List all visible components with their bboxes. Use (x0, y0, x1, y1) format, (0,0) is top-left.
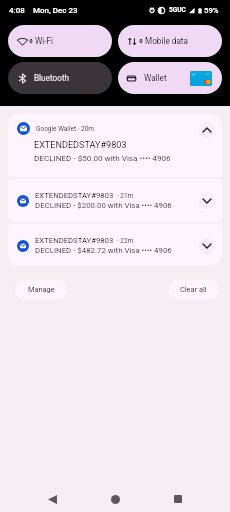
button[interactable]: Bluetooth (8, 62, 112, 94)
button[interactable]: EXTENDEDSTAY#9803 (8, 179, 222, 222)
staticText: Manage (28, 285, 55, 294)
button[interactable]: Google Wallet · 20m (8, 114, 222, 177)
staticText: Mon, Dec 23 (33, 6, 78, 15)
staticText: Wallet (144, 73, 167, 83)
staticText: 59% (204, 6, 219, 15)
button[interactable]: Wallet (118, 62, 222, 94)
button[interactable]: Mobile data (118, 25, 222, 57)
button[interactable]: Expand notification (199, 238, 215, 254)
button[interactable]: EXTENDEDSTAY#9803 (8, 224, 222, 266)
staticText: EXTENDEDSTAY#9803 (34, 140, 127, 151)
staticText: Mobile data (145, 36, 188, 46)
staticText: DECLINED - $50.00 with Visa •••• 4906 (34, 153, 171, 162)
staticText: · 21m (117, 192, 134, 200)
staticText: EXTENDEDSTAY#9803 (35, 191, 114, 200)
staticText: DECLINED - $482.72 with Visa •••• 4906 (35, 246, 172, 255)
button[interactable]: Recent apps (166, 487, 190, 511)
button[interactable]: Back (40, 487, 64, 511)
staticText: · 22m (117, 237, 134, 245)
button[interactable]: Manage (15, 280, 67, 299)
staticText: 4:08 (9, 6, 25, 15)
button[interactable]: Home (103, 487, 127, 511)
button[interactable]: Collapse notification (199, 122, 215, 138)
staticText: Bluetooth (34, 73, 70, 83)
button[interactable]: Expand notification (199, 193, 215, 209)
staticText: EXTENDEDSTAY#9803 (35, 236, 114, 245)
button[interactable]: Clear all (168, 280, 219, 299)
staticText: Google Wallet · 20m (36, 125, 94, 133)
staticText: DECLINED - $200.00 with Visa •••• 4906 (35, 201, 172, 210)
button[interactable]: Wi-Fi (8, 25, 112, 57)
staticText: Clear all (180, 285, 207, 294)
staticText: 5GUC (169, 6, 186, 14)
staticText: Wi-Fi (35, 36, 54, 46)
